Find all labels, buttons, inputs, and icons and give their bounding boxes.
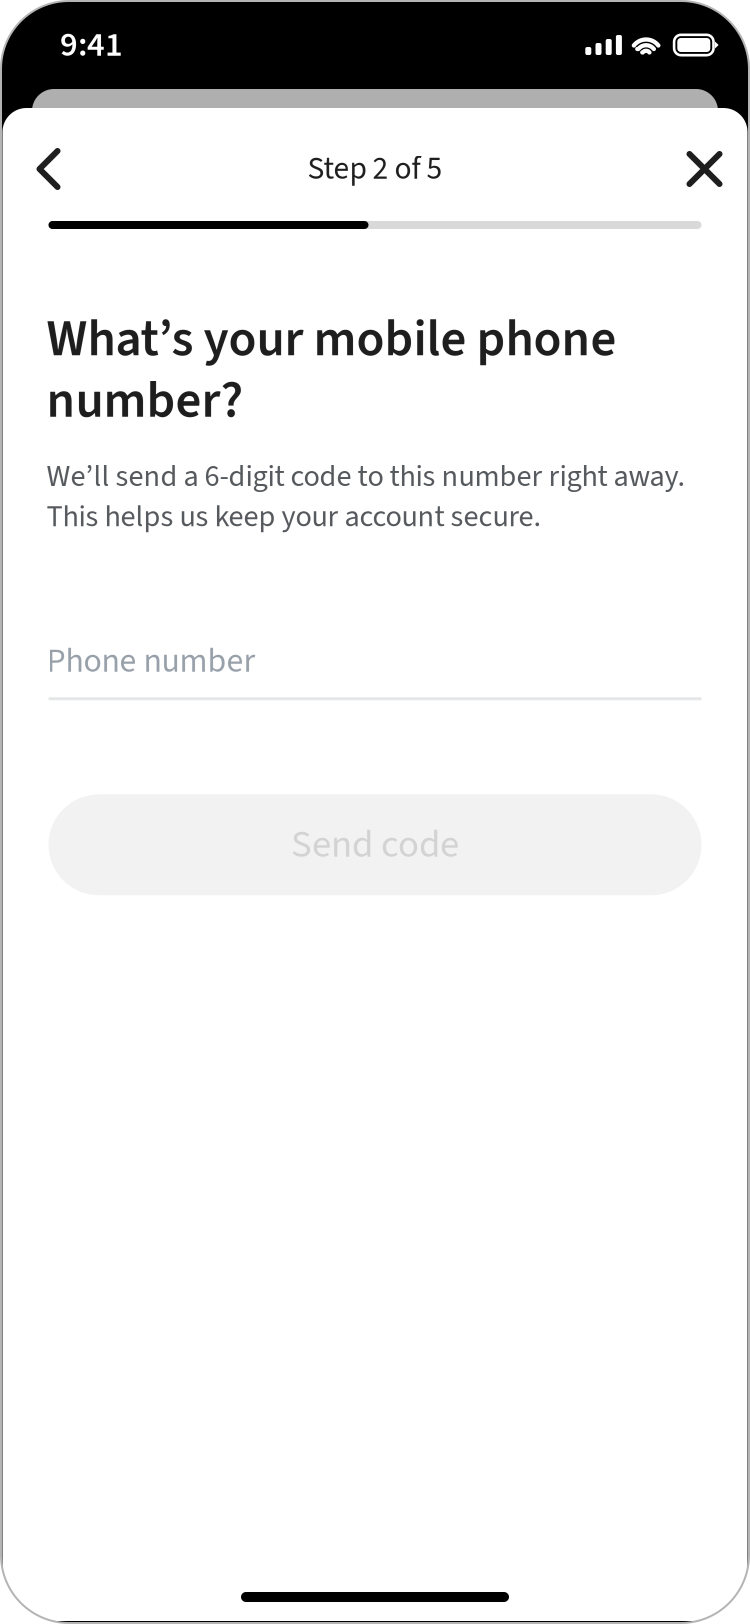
button[interactable]: Back: [18, 138, 78, 200]
staticText: We’ll send a 6-digit code to this number…: [46, 455, 685, 498]
button[interactable]: Send code: [48, 794, 701, 895]
staticText: 9:41: [60, 20, 123, 69]
staticText: Step 2 of 5: [307, 147, 442, 191]
staticText: number?: [46, 364, 243, 437]
staticText: What’s your mobile phone: [46, 303, 616, 375]
staticText: Phone number: [46, 637, 255, 685]
staticText: This helps us keep your account secure.: [46, 495, 541, 538]
staticText: Send code: [291, 817, 459, 872]
button[interactable]: Close: [674, 138, 734, 200]
